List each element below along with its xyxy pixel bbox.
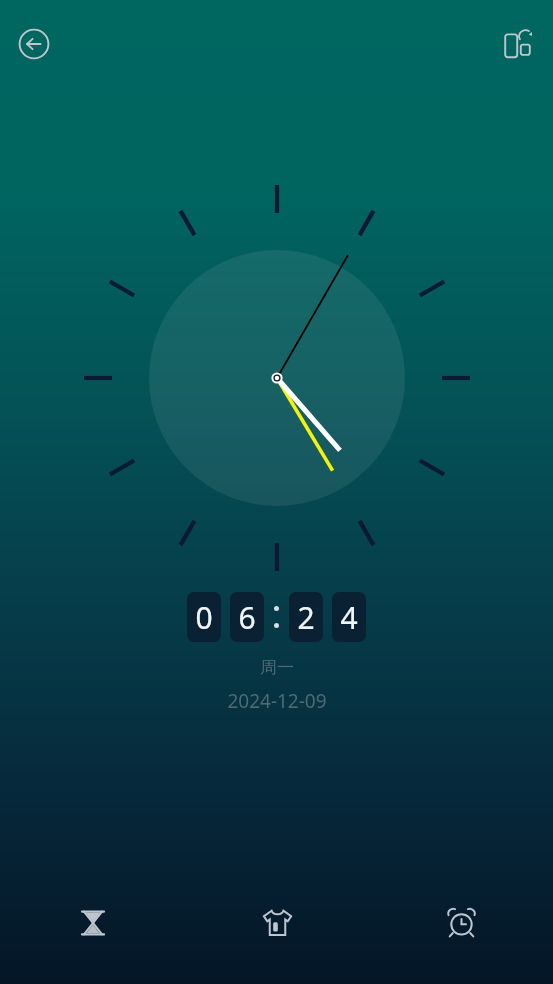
staticText: 2 xyxy=(297,597,315,638)
button[interactable]: Outfit xyxy=(185,895,369,950)
staticText: 2024-12-09 xyxy=(227,688,327,714)
button[interactable]: Back xyxy=(10,20,58,68)
staticText: 4 xyxy=(340,597,358,638)
button[interactable]: Switch layout xyxy=(495,20,543,68)
staticText: 0 xyxy=(195,597,213,638)
button[interactable]: Timer xyxy=(0,895,185,950)
staticText: 6 xyxy=(238,597,256,638)
button[interactable]: Alarm xyxy=(369,895,553,950)
staticText: 周一 xyxy=(260,657,294,678)
